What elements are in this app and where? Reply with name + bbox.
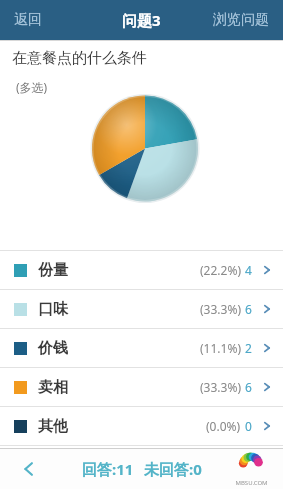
staticText: 返回 bbox=[14, 11, 42, 29]
staticText: (22.2%) bbox=[200, 262, 241, 278]
button[interactable]: 返回 bbox=[10, 7, 46, 33]
staticText: 浏览问题 bbox=[213, 11, 269, 29]
button[interactable]: 其他 bbox=[0, 407, 283, 445]
staticText: 卖相 bbox=[38, 378, 68, 397]
staticText: 6 bbox=[245, 379, 252, 395]
button[interactable]: 浏览问题 bbox=[209, 7, 273, 33]
staticText: 口味 bbox=[38, 300, 68, 319]
staticText: 在意餐点的什么条件 bbox=[12, 49, 147, 68]
staticText: (0.0%) bbox=[206, 418, 241, 434]
button[interactable]: Back bbox=[12, 452, 46, 486]
staticText: 价钱 bbox=[38, 339, 68, 358]
button[interactable]: 份量 bbox=[0, 251, 283, 289]
staticText: 其他 bbox=[38, 417, 68, 436]
staticText: 4 bbox=[245, 262, 252, 278]
button[interactable]: 回答:11 bbox=[82, 459, 134, 479]
staticText: 问题3 bbox=[122, 10, 161, 30]
staticText: (33.3%) bbox=[200, 301, 241, 317]
staticText: 0 bbox=[245, 418, 252, 434]
staticText: (11.1%) bbox=[200, 340, 241, 356]
staticText: MBSU.COM bbox=[235, 479, 268, 487]
staticText: 份量 bbox=[38, 261, 68, 280]
button[interactable]: 价钱 bbox=[0, 329, 283, 367]
staticText: (33.3%) bbox=[200, 379, 241, 395]
button[interactable]: 未回答:0 bbox=[144, 459, 202, 479]
staticText: 6 bbox=[245, 301, 252, 317]
staticText: (多选) bbox=[16, 79, 48, 95]
staticText: 2 bbox=[245, 340, 252, 356]
button[interactable]: 卖相 bbox=[0, 368, 283, 406]
button[interactable]: 口味 bbox=[0, 290, 283, 328]
